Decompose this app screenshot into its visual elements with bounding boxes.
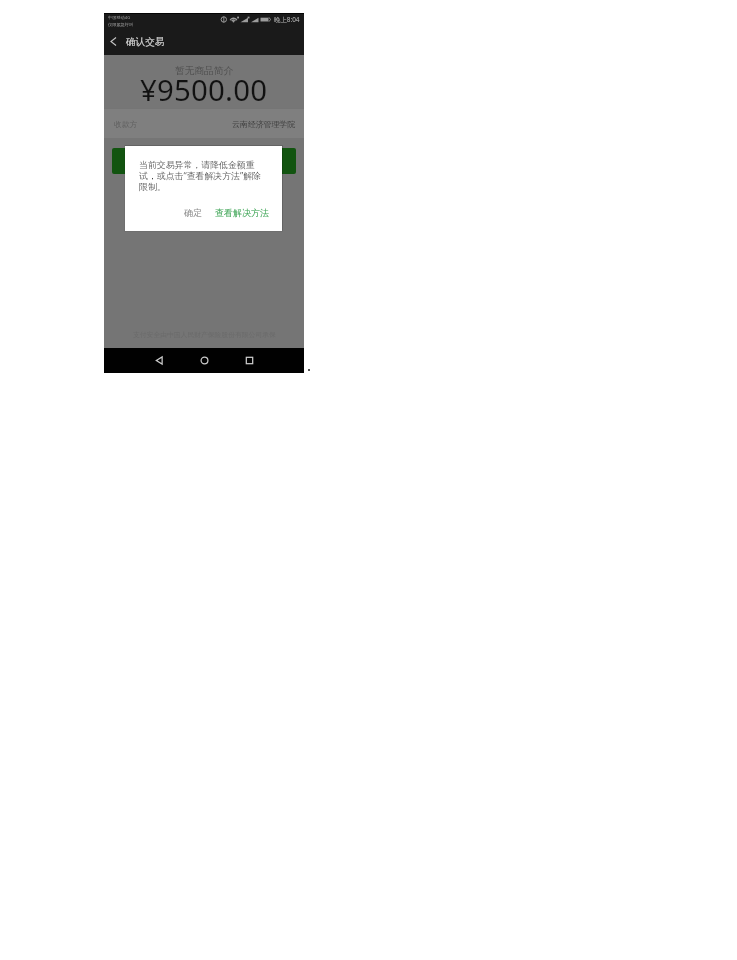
staticText: ¥9500.00 — [140, 70, 268, 110]
staticText: 确认交易 — [126, 36, 165, 48]
staticText: 确认付款 — [186, 156, 222, 167]
button[interactable]: Recents — [227, 348, 272, 373]
staticText: 仅限紧急呼叫 — [108, 22, 134, 27]
staticText: 收款方 — [114, 119, 138, 129]
button[interactable]: 查看解决方法 — [212, 204, 272, 221]
button[interactable]: Back — [104, 33, 124, 53]
staticText: 晚上8:04 — [274, 15, 300, 24]
staticText: 查看解决方法 — [215, 207, 269, 218]
button[interactable]: 确定 — [180, 204, 206, 221]
staticText: 中国移动4G — [108, 15, 131, 21]
staticText: 当前交易异常，请降低金额重试，或点击“查看解决方法”解除限制。 — [139, 159, 264, 193]
staticText: 确定 — [184, 207, 202, 218]
button[interactable]: 确认付款 — [112, 148, 296, 174]
button[interactable]: Home — [182, 348, 227, 373]
staticText: 暂无商品简介 — [175, 65, 234, 77]
button[interactable]: Back — [137, 348, 182, 373]
button[interactable]: 收款方 — [104, 109, 304, 138]
staticText: 云南经济管理学院 — [232, 119, 296, 129]
